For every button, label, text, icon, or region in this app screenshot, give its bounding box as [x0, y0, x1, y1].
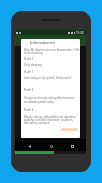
staticText: laboratory workers): [24, 121, 50, 125]
staticText: Just sitting or lying (still, feel peopl…: [24, 76, 72, 80]
staticText: Informationen: [30, 40, 56, 45]
staticText: Stufe 1: [24, 70, 34, 74]
button[interactable]: Back: [22, 139, 36, 151]
staticText: Only sleeping: [24, 63, 42, 67]
staticText: Bitte Mr. Nartin ist unser Anwesende, Hi…: [24, 48, 80, 52]
staticText: ANNEHMEN: [61, 128, 78, 132]
staticText: Stufe 1: [24, 57, 34, 61]
staticText: Stufe 2: [24, 88, 34, 92]
button[interactable]: ANNEHMEN: [59, 126, 80, 134]
staticText: Simply exclusively sitting little becaus…: [24, 96, 75, 100]
staticText: acuminate jahab susky: [24, 100, 54, 104]
staticText: Stufe 4: [24, 108, 34, 112]
button[interactable]: Recent apps: [65, 139, 79, 151]
staticText: walking activities (lettewise, students,: [24, 118, 74, 122]
staticText: Mostly sitting, with additional standing…: [24, 115, 77, 119]
staticText: 11:32: [76, 31, 84, 35]
button[interactable]: Home: [44, 139, 58, 151]
staticText: to the hearing: [24, 51, 43, 55]
